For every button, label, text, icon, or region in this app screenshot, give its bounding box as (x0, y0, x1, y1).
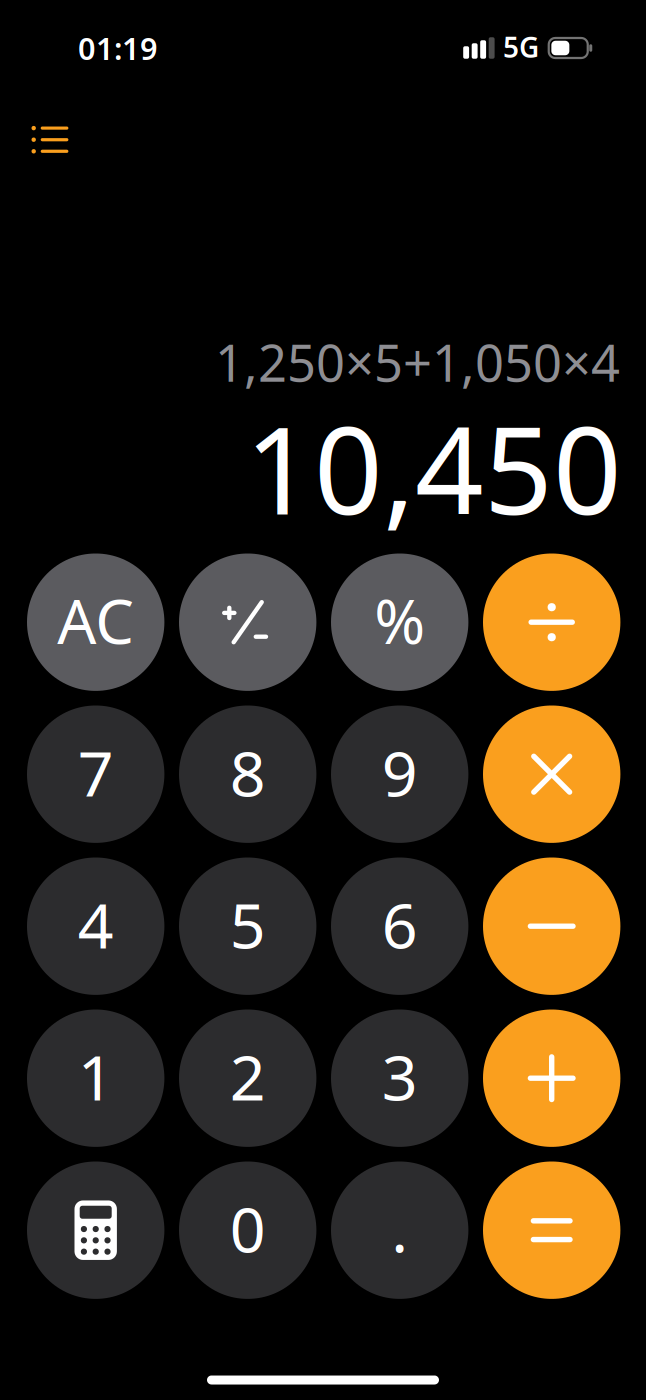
button[interactable]: . (331, 1161, 468, 1299)
staticText: 1 (78, 1035, 114, 1118)
staticText: % (374, 579, 425, 661)
button[interactable]: Calculator (27, 1161, 164, 1299)
staticText: 0 (230, 1187, 266, 1270)
button[interactable]: 3 (331, 1009, 468, 1147)
staticText: 01:19 (78, 28, 158, 68)
staticText: 6 (382, 883, 418, 966)
button[interactable]: Equals (483, 1161, 620, 1299)
button[interactable]: AC (27, 553, 164, 691)
staticText: 5 (230, 883, 266, 966)
staticText: 4 (78, 883, 114, 966)
button[interactable]: 7 (27, 705, 164, 843)
staticText: 5G (503, 28, 539, 66)
button[interactable]: 8 (179, 705, 316, 843)
button[interactable]: Multiply (483, 705, 620, 843)
button[interactable]: 4 (27, 857, 164, 995)
button[interactable]: 6 (331, 857, 468, 995)
button[interactable]: Minus (483, 857, 620, 995)
staticText: 9 (382, 731, 418, 814)
button[interactable]: Divide (483, 553, 620, 691)
staticText: 3 (382, 1035, 418, 1118)
staticText: . (391, 1187, 408, 1270)
staticText: 2 (230, 1035, 266, 1118)
staticText: 7 (78, 731, 114, 814)
button[interactable]: 0 (179, 1161, 316, 1299)
staticText: 10,450 (245, 388, 622, 548)
staticText: 8 (230, 731, 266, 814)
button[interactable]: Plus (483, 1009, 620, 1147)
button[interactable]: 1 (27, 1009, 164, 1147)
button[interactable]: 9 (331, 705, 468, 843)
staticText: AC (57, 579, 134, 661)
button[interactable]: % (331, 553, 468, 691)
button[interactable]: Plus minus (179, 553, 316, 691)
button[interactable]: 2 (179, 1009, 316, 1147)
staticText: 1,250×5+1,050×4 (215, 328, 620, 396)
button[interactable]: 5 (179, 857, 316, 995)
button[interactable]: History (10, 102, 90, 178)
